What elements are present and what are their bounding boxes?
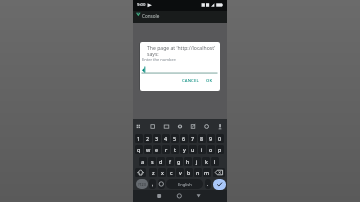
staticText: English xyxy=(178,182,192,187)
staticText: 8 xyxy=(200,135,204,142)
staticText: v xyxy=(179,169,182,176)
button[interactable]: 7 xyxy=(189,134,197,143)
button[interactable]: z xyxy=(149,168,157,177)
staticText: Enter the number: xyxy=(142,57,177,62)
staticText: d xyxy=(159,158,163,165)
staticText: Console xyxy=(142,13,160,19)
button[interactable]: e xyxy=(153,145,161,154)
button[interactable]: g xyxy=(175,157,183,166)
staticText: r xyxy=(165,146,168,153)
staticText: t xyxy=(174,146,176,153)
button[interactable] xyxy=(158,179,165,189)
button[interactable]: 3 xyxy=(153,134,161,143)
button[interactable] xyxy=(135,168,146,177)
staticText: p xyxy=(218,146,222,153)
staticText: l xyxy=(214,158,216,165)
button[interactable]: y xyxy=(180,145,188,154)
button[interactable]: w xyxy=(144,145,152,154)
button[interactable]: 8 xyxy=(198,134,206,143)
staticText: The page at ‘http://localhost’ says: xyxy=(147,45,216,58)
button[interactable]: h xyxy=(184,157,192,166)
staticText: 5 xyxy=(173,135,177,142)
staticText: 9:00 xyxy=(137,2,146,8)
button[interactable]: j xyxy=(193,157,201,166)
button[interactable]: k xyxy=(202,157,210,166)
staticText: 3 xyxy=(155,135,159,142)
staticText: u xyxy=(191,146,195,153)
staticText: 0 xyxy=(218,135,222,142)
button[interactable]: OK xyxy=(203,76,215,85)
staticText: y xyxy=(183,146,186,153)
button[interactable]: q xyxy=(135,145,143,154)
button[interactable]: 5 xyxy=(171,134,179,143)
staticText: m xyxy=(204,169,210,176)
staticText: g xyxy=(177,158,181,165)
button[interactable]: 0 xyxy=(216,134,224,143)
staticText: 2 xyxy=(146,135,150,142)
staticText: n xyxy=(196,169,200,176)
button[interactable]: s xyxy=(148,157,156,166)
button[interactable] xyxy=(155,191,164,201)
button[interactable]: o xyxy=(207,145,215,154)
staticText: a xyxy=(141,158,145,165)
staticText: 9 xyxy=(209,135,213,142)
button[interactable]: 6 xyxy=(180,134,188,143)
button[interactable]: c xyxy=(167,168,175,177)
button[interactable] xyxy=(194,191,203,201)
staticText: z xyxy=(152,169,155,176)
staticText: e xyxy=(155,146,159,153)
staticText: 6 xyxy=(182,135,186,142)
button[interactable]: , xyxy=(149,179,156,189)
staticText: b xyxy=(187,169,191,176)
button[interactable]: b xyxy=(185,168,193,177)
button[interactable]: x xyxy=(158,168,166,177)
staticText: w xyxy=(146,146,151,153)
staticText: x xyxy=(161,169,164,176)
button[interactable] xyxy=(213,168,225,177)
staticText: i xyxy=(201,146,203,153)
staticText: c xyxy=(170,169,173,176)
button[interactable]: p xyxy=(216,145,224,154)
staticText: 1 xyxy=(137,135,141,142)
button[interactable]: CANCEL xyxy=(180,76,201,85)
staticText: 7 xyxy=(191,135,195,142)
staticText: s xyxy=(151,158,154,165)
button[interactable]: English xyxy=(166,179,203,189)
button[interactable]: n xyxy=(194,168,202,177)
staticText: CANCEL xyxy=(182,78,199,84)
button[interactable]: 9 xyxy=(207,134,215,143)
staticText: j xyxy=(196,158,198,165)
staticText: h xyxy=(186,158,190,165)
button[interactable] xyxy=(175,191,184,201)
button[interactable]: i xyxy=(198,145,206,154)
button[interactable]: ?123 xyxy=(136,179,148,189)
staticText: , xyxy=(152,181,154,188)
button[interactable]: 2 xyxy=(144,134,152,143)
button[interactable]: r xyxy=(162,145,170,154)
button[interactable]: d xyxy=(157,157,165,166)
staticText: OK xyxy=(206,78,213,84)
button[interactable]: 4 xyxy=(162,134,170,143)
staticText: f xyxy=(169,158,171,165)
staticText: q xyxy=(137,146,141,153)
button[interactable]: v xyxy=(176,168,184,177)
staticText: ?123 xyxy=(138,182,146,187)
button[interactable]: l xyxy=(211,157,219,166)
button[interactable]: t xyxy=(171,145,179,154)
button[interactable]: . xyxy=(205,179,211,189)
staticText: k xyxy=(205,158,208,165)
button[interactable]: m xyxy=(203,168,211,177)
button[interactable]: u xyxy=(189,145,197,154)
button[interactable] xyxy=(213,179,226,190)
button[interactable]: a xyxy=(139,157,147,166)
staticText: o xyxy=(209,146,213,153)
button[interactable]: 1 xyxy=(135,134,143,143)
staticText: . xyxy=(207,181,209,188)
staticText: 4 xyxy=(164,135,168,142)
button[interactable]: f xyxy=(166,157,174,166)
